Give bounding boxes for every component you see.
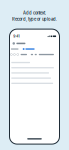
- button[interactable]: Recording session: [9, 42, 59, 45]
- button[interactable]: Tool: [13, 54, 15, 55]
- staticText: Add context.: [23, 10, 46, 15]
- staticText: Record, type or upload.: [12, 17, 57, 22]
- staticText: 9:41: [13, 34, 19, 38]
- button[interactable]: Tool: [10, 54, 12, 55]
- button[interactable]: Tool: [17, 54, 19, 55]
- button[interactable]: Create new: [23, 48, 35, 50]
- button[interactable]: Context: [11, 48, 18, 50]
